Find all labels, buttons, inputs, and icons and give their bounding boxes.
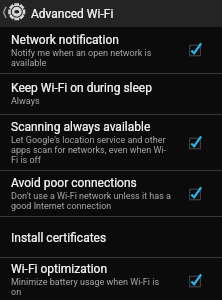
- staticText: Avoid poor connections: [11, 176, 137, 190]
- staticText: Network notification: [11, 33, 119, 47]
- staticText: Notify me when an open network is availa…: [11, 48, 171, 68]
- staticText: Let Google's location service and other …: [11, 135, 171, 165]
- staticText: Keep Wi-Fi on during sleep: [11, 81, 152, 95]
- staticText: Install certificates: [11, 231, 107, 245]
- button[interactable]: Network notification: [0, 27, 222, 73]
- staticText: Wi-Fi optimization: [11, 262, 108, 276]
- staticText: Advanced Wi-Fi: [31, 7, 114, 21]
- staticText: Minimize battery usage when Wi-Fi is on: [11, 277, 171, 297]
- button[interactable]: Avoid poor connections: [0, 171, 222, 216]
- button[interactable]: Install certificates: [0, 217, 222, 257]
- button[interactable]: Scanning always available: [0, 115, 222, 170]
- button[interactable]: Wi-Fi optimization: [0, 258, 222, 300]
- button[interactable]: Keep Wi-Fi on during sleep: [0, 74, 222, 114]
- staticText: Scanning always available: [11, 120, 151, 134]
- staticText: Always: [11, 96, 40, 106]
- button[interactable]: Navigate up, Settings: [0, 0, 29, 27]
- staticText: Don't use a Wi-Fi network unless it has …: [11, 191, 171, 211]
